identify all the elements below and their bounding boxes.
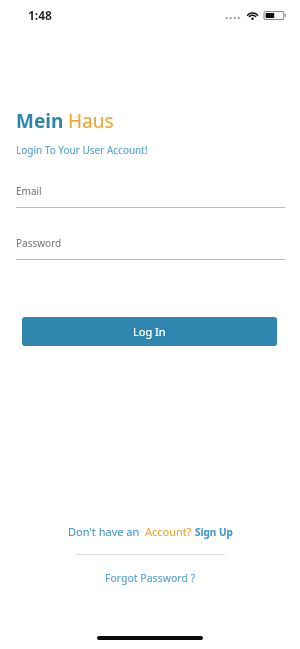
staticText: Login To Your User Account! [16,143,148,157]
staticText: Account? [145,524,192,539]
button[interactable]: Forgot Password ? [105,571,196,585]
staticText: Sign Up [195,525,233,539]
staticText: Don't have an [68,524,140,539]
staticText: Mein [16,108,64,134]
button[interactable]: Don't have an [68,524,233,539]
staticText: 1:48 [28,7,52,23]
staticText: Forgot Password ? [105,571,196,585]
button[interactable]: Log In [22,317,277,346]
staticText: Haus [68,108,114,134]
staticText: Log In [133,324,166,339]
staticText: Email [16,184,42,198]
staticText: Password [16,236,62,250]
